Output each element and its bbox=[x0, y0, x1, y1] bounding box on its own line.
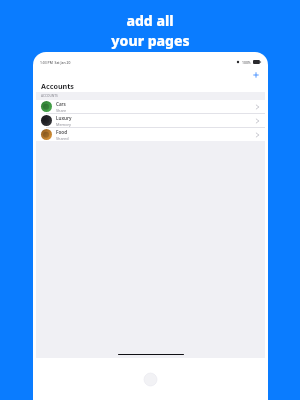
staticText: add all bbox=[126, 11, 174, 30]
staticText: Accounts bbox=[41, 81, 74, 91]
staticText: Share bbox=[56, 108, 67, 113]
staticText: Memory bbox=[56, 122, 71, 127]
staticText: ACCOUNTS bbox=[41, 94, 58, 98]
button[interactable]: Cars bbox=[36, 100, 265, 114]
staticText: 100% bbox=[242, 60, 251, 65]
staticText: Luxury bbox=[56, 115, 72, 121]
staticText: your pages bbox=[111, 31, 190, 50]
button[interactable]: Add account bbox=[251, 70, 260, 79]
staticText: 1:03 PM Sat Jan 20 bbox=[40, 60, 71, 65]
button[interactable]: Food bbox=[36, 128, 265, 141]
staticText: Cars bbox=[56, 101, 66, 107]
staticText: Shared bbox=[56, 136, 69, 141]
staticText: Food bbox=[56, 129, 68, 135]
button[interactable]: Luxury bbox=[36, 114, 265, 128]
